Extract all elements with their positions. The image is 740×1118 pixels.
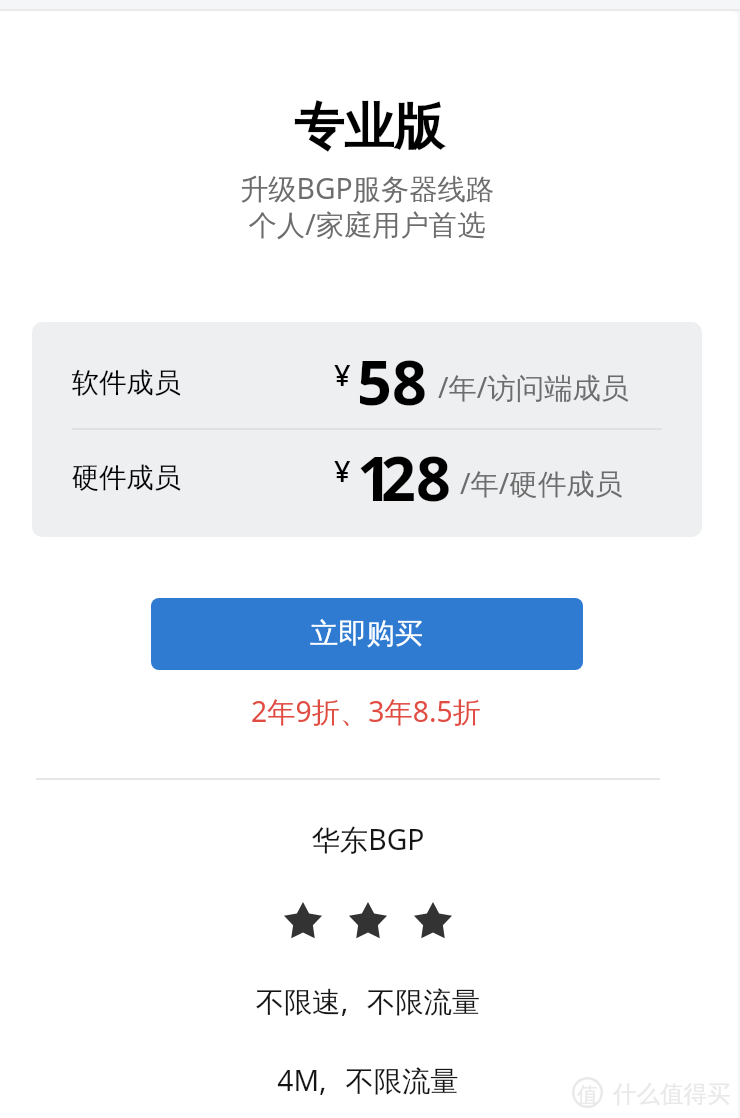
staticText: 升级BGP服务器线路 个人/家庭用户首选 [0, 169, 736, 243]
button[interactable] [32, 322, 702, 428]
button[interactable]: 立即购买 [151, 598, 583, 670]
staticText: 1 [357, 436, 392, 519]
staticText: 硬件成员 [72, 461, 182, 495]
staticText: /年/硬件成员 [460, 464, 623, 503]
button[interactable]: 2年9折、3年8.5折 [248, 692, 484, 730]
staticText: 4M, 不限流量 [0, 1061, 737, 1100]
staticText: 什么值得买 [613, 1079, 731, 1109]
staticText: 28 [381, 436, 451, 519]
staticText: /年/访问端成员 [438, 368, 629, 407]
staticText: 立即购买 [310, 616, 424, 652]
staticText: 专业版 [0, 96, 738, 159]
staticText: ¥ [334, 355, 351, 394]
staticText: 2年9折、3年8.5折 [248, 692, 484, 730]
button[interactable] [32, 430, 702, 537]
staticText: 值 [577, 1082, 598, 1108]
staticText: 58 [357, 340, 427, 423]
staticText: 不限速, 不限流量 [0, 982, 737, 1021]
staticText: ¥ [334, 451, 351, 490]
staticText: 华东BGP [0, 820, 737, 859]
staticText: 软件成员 [72, 366, 182, 400]
